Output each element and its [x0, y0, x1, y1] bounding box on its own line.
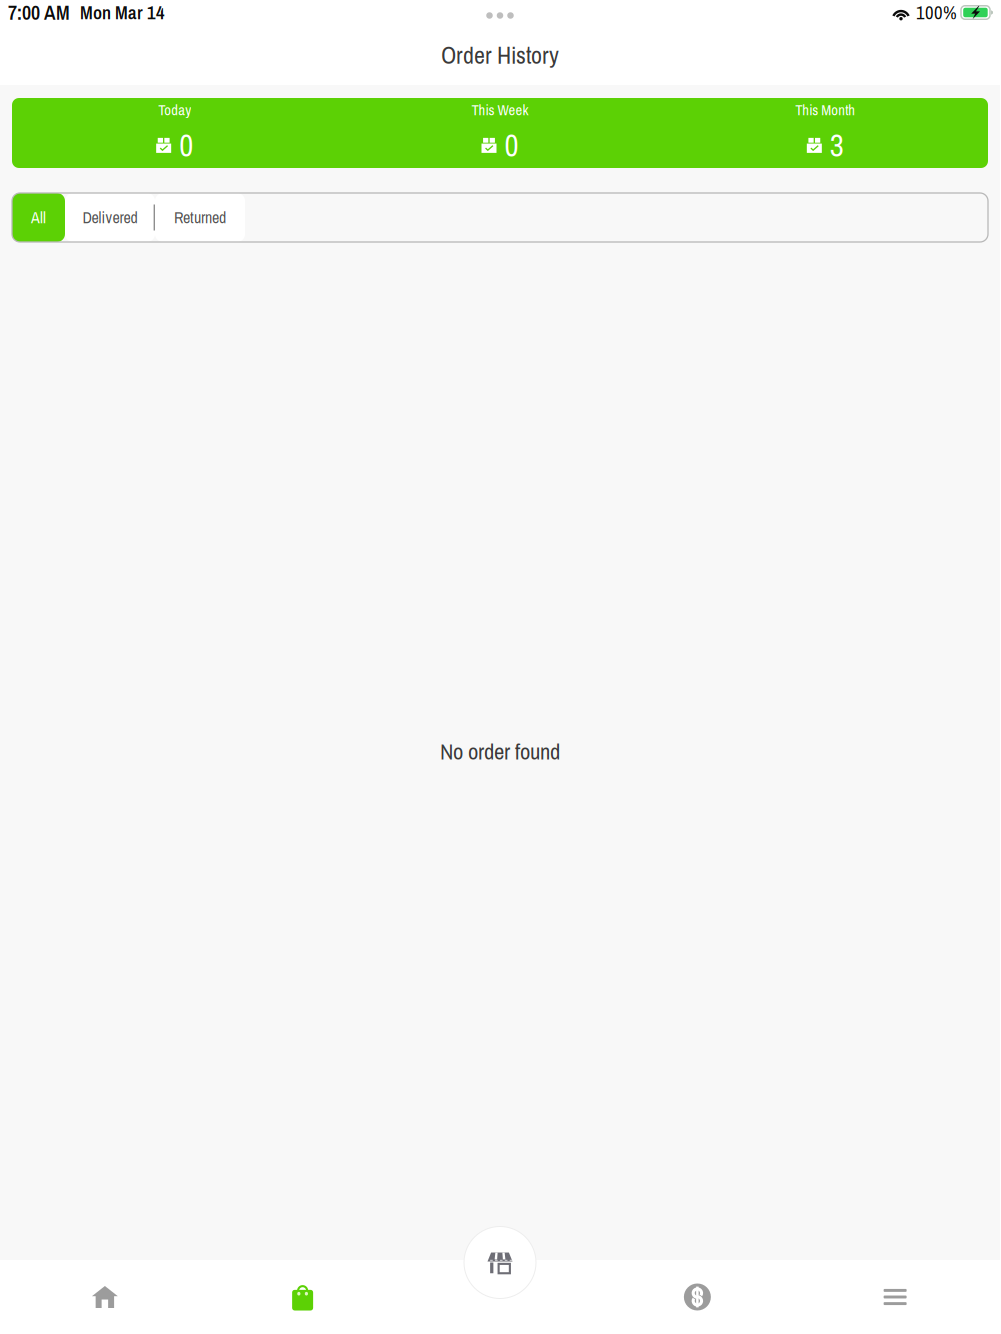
staticText: 0	[504, 125, 518, 166]
staticText: This Week	[471, 100, 528, 120]
button[interactable]: Store	[463, 1226, 536, 1299]
staticText: 100%	[916, 0, 957, 25]
button[interactable]: Home	[6, 1260, 204, 1334]
staticText: 0	[179, 125, 193, 166]
staticText: Mon Mar 14	[80, 0, 165, 25]
staticText: Returned	[174, 207, 226, 228]
button[interactable]: Returned	[155, 193, 245, 242]
staticText: This Month	[795, 100, 855, 120]
button[interactable]: More	[796, 1260, 994, 1334]
staticText: 7:00 AM	[8, 0, 70, 26]
staticText: Delivered	[82, 207, 137, 228]
staticText: Today	[158, 100, 191, 120]
staticText: Order History	[441, 39, 559, 71]
button[interactable]: Delivered	[65, 193, 155, 242]
staticText: 3	[830, 125, 844, 166]
staticText: No order found	[440, 736, 560, 766]
button[interactable]: Orders	[204, 1260, 402, 1334]
button[interactable]: Earnings	[598, 1260, 796, 1334]
staticText: All	[31, 207, 46, 228]
button[interactable]: All	[12, 193, 65, 242]
